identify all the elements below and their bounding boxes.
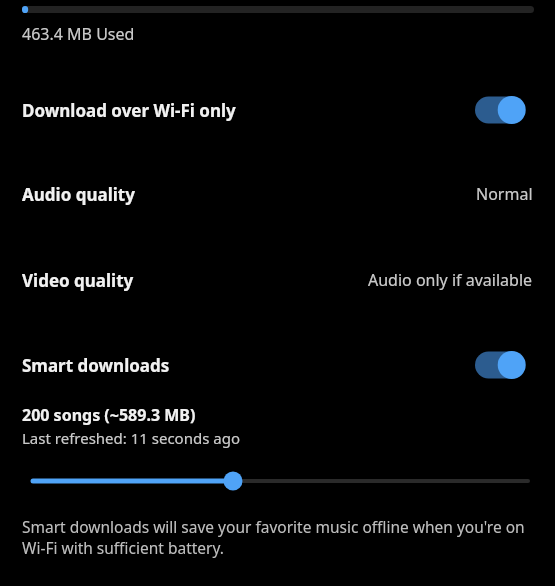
- button[interactable]: Smart downloads toggle: [475, 348, 535, 382]
- staticText: Download over Wi-Fi only: [22, 99, 236, 122]
- staticText: 463.4 MB Used: [22, 23, 135, 45]
- staticText: Last refreshed: 11 seconds ago: [22, 428, 240, 448]
- button[interactable]: Smart downloads amount slider: [0, 470, 555, 492]
- staticText: Normal: [476, 183, 533, 205]
- button[interactable]: Download over Wi-Fi only: [0, 87, 555, 133]
- staticText: Smart downloads will save your favorite …: [22, 516, 525, 559]
- staticText: Video quality: [22, 269, 134, 292]
- button[interactable]: Video quality: [0, 260, 555, 300]
- staticText: Audio quality: [22, 183, 135, 206]
- staticText: Audio only if available: [368, 269, 533, 291]
- staticText: Smart downloads: [22, 354, 170, 377]
- button[interactable]: Audio quality: [0, 174, 555, 214]
- staticText: 200 songs (~589.3 MB): [22, 404, 196, 426]
- button[interactable]: Download over Wi-Fi only toggle: [475, 93, 535, 127]
- button[interactable]: Smart downloads: [0, 342, 555, 388]
